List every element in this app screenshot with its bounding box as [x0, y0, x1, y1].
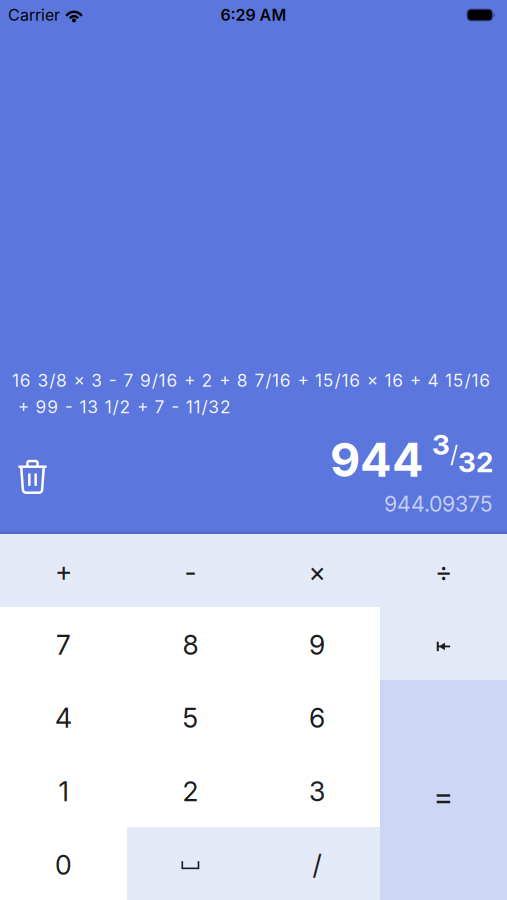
button[interactable]: -: [127, 534, 254, 607]
button[interactable]: 1: [0, 753, 127, 827]
staticText: Carrier: [8, 6, 60, 24]
staticText: /: [312, 849, 321, 881]
button[interactable]: Clear: [0, 456, 46, 489]
staticText: -: [184, 556, 196, 588]
staticText: =: [433, 778, 453, 814]
staticText: 6:29 AM: [220, 6, 286, 24]
button[interactable]: 2: [127, 753, 254, 827]
staticText: 5: [182, 702, 198, 734]
button[interactable]: 9: [254, 607, 380, 680]
staticText: +: [55, 556, 72, 588]
button[interactable]: Backspace: [380, 607, 507, 680]
button[interactable]: =: [380, 680, 507, 900]
button[interactable]: 4: [0, 680, 127, 753]
button[interactable]: /: [254, 827, 380, 900]
staticText: 0: [55, 849, 72, 881]
staticText: 8: [182, 629, 198, 661]
staticText: ×: [308, 556, 325, 588]
staticText: 944 3/32: [330, 428, 493, 487]
staticText: 4: [55, 702, 72, 734]
staticText: 6: [309, 702, 325, 734]
button[interactable]: 5: [127, 680, 254, 753]
button[interactable]: 6: [254, 680, 380, 753]
staticText: 16 3/8 × 3 - 7 9/16 + 2 + 8 7/16 + 15/16…: [12, 370, 490, 391]
button[interactable]: +: [0, 534, 127, 607]
staticText: 7: [56, 629, 71, 661]
button[interactable]: 7: [0, 607, 127, 680]
staticText: + 99 - 13 1/2 + 7 - 11/32: [12, 397, 231, 417]
button[interactable]: Space: [127, 827, 254, 900]
staticText: ÷: [435, 556, 452, 588]
staticText: 2: [182, 776, 198, 807]
staticText: 944.09375: [384, 491, 493, 516]
staticText: 1: [58, 776, 68, 807]
button[interactable]: 0: [0, 827, 127, 900]
button[interactable]: ÷: [380, 534, 507, 607]
staticText: 9: [309, 629, 325, 661]
button[interactable]: 8: [127, 607, 254, 680]
staticText: 3: [309, 776, 325, 807]
button[interactable]: 3: [254, 753, 380, 827]
button[interactable]: ×: [254, 534, 380, 607]
